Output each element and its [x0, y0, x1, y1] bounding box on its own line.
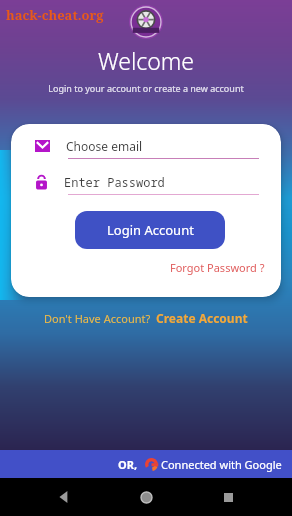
staticText: Choose email [66, 138, 143, 154]
staticText: Don't Have Account? [44, 311, 151, 326]
staticText: OR, [118, 457, 138, 472]
button[interactable]: Password [11, 174, 281, 195]
button[interactable]: Forgot Password ? [170, 258, 281, 277]
other: Password [35, 175, 48, 190]
staticText: hack-cheat.org [6, 6, 104, 24]
button[interactable]: Login Account [75, 211, 225, 249]
other: Email [35, 140, 50, 152]
staticText: Login to your account or create a new ac… [48, 82, 244, 94]
staticText: Connected with Google [161, 457, 282, 472]
staticText: Create Account [156, 310, 248, 326]
button[interactable]: OR, [0, 450, 292, 478]
button[interactable]: Email [11, 138, 281, 159]
button[interactable]: Home [128, 479, 164, 515]
staticText: Enter Password [64, 174, 165, 190]
staticText: Forgot Password ? [170, 260, 265, 275]
button[interactable]: Recent apps [210, 479, 246, 515]
staticText: Welcome [98, 45, 195, 76]
button[interactable]: Create Account [156, 310, 248, 326]
staticText: Login Account [107, 221, 194, 239]
button[interactable]: Back [46, 479, 82, 515]
